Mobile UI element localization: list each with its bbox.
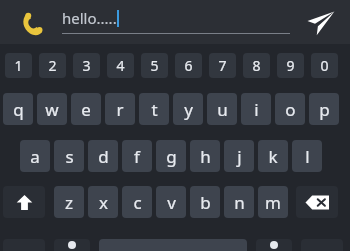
button[interactable]: k	[258, 140, 288, 172]
button[interactable]: t	[139, 93, 169, 125]
button[interactable]: q	[3, 93, 33, 125]
staticText: h	[200, 145, 211, 168]
button[interactable]: j	[224, 140, 254, 172]
staticText: 2	[48, 56, 57, 75]
button[interactable]: a	[20, 140, 50, 172]
button[interactable]: n	[224, 186, 254, 218]
staticText: w	[45, 98, 59, 121]
staticText: 3	[82, 56, 91, 75]
button[interactable]: 2	[39, 53, 66, 78]
staticText: 8	[252, 56, 261, 75]
button[interactable]: Call	[17, 8, 47, 38]
button[interactable]: s	[54, 140, 84, 172]
button[interactable]: 0	[311, 53, 338, 78]
staticText: 5	[150, 56, 159, 75]
staticText: a	[30, 145, 40, 168]
button[interactable]: 3	[73, 53, 100, 78]
staticText: r	[116, 98, 124, 121]
staticText: 6	[184, 56, 193, 75]
staticText: n	[234, 191, 245, 214]
staticText: 4	[116, 56, 125, 75]
button[interactable]: z	[54, 186, 84, 218]
staticText: q	[13, 98, 24, 121]
button[interactable]: x	[88, 186, 118, 218]
button[interactable]: 9	[277, 53, 304, 78]
button[interactable]: c	[122, 186, 152, 218]
button[interactable]: g	[156, 140, 186, 172]
button[interactable]: u	[207, 93, 237, 125]
button[interactable]: i	[241, 93, 271, 125]
staticText: hello.....	[62, 8, 117, 28]
staticText: x	[99, 191, 108, 214]
button[interactable]: Numbers	[256, 239, 292, 251]
button[interactable]: Backspace	[296, 186, 338, 218]
staticText: m	[265, 191, 281, 214]
button[interactable]: d	[88, 140, 118, 172]
staticText: i	[254, 98, 259, 121]
staticText: d	[98, 145, 109, 168]
staticText: y	[184, 98, 193, 121]
button[interactable]: 5	[141, 53, 168, 78]
staticText: p	[319, 98, 330, 121]
staticText: k	[268, 145, 278, 168]
button[interactable]: b	[190, 186, 220, 218]
staticText: t	[151, 98, 158, 121]
button[interactable]: Shift	[3, 186, 45, 218]
button[interactable]: Settings	[54, 239, 90, 251]
staticText: v	[167, 191, 176, 214]
staticText: s	[65, 145, 74, 168]
button[interactable]: p	[309, 93, 339, 125]
button[interactable]: 4	[107, 53, 134, 78]
button[interactable]: h	[190, 140, 220, 172]
button[interactable]: 8	[243, 53, 270, 78]
staticText: z	[65, 191, 73, 214]
button[interactable]: r	[105, 93, 135, 125]
button[interactable]: o	[275, 93, 305, 125]
staticText: o	[285, 98, 296, 121]
button[interactable]: f	[122, 140, 152, 172]
staticText: 7	[218, 56, 227, 75]
button[interactable]: 7	[209, 53, 236, 78]
staticText: e	[81, 98, 91, 121]
button[interactable]: w	[37, 93, 67, 125]
staticText: 1	[14, 56, 23, 75]
staticText: f	[134, 145, 140, 168]
button[interactable]: v	[156, 186, 186, 218]
button[interactable]: 1	[5, 53, 32, 78]
button[interactable]: 6	[175, 53, 202, 78]
staticText: l	[305, 145, 310, 168]
button[interactable]: l	[292, 140, 322, 172]
staticText: 0	[320, 56, 329, 75]
button[interactable]: e	[71, 93, 101, 125]
button[interactable]: y	[173, 93, 203, 125]
staticText: u	[217, 98, 228, 121]
staticText: c	[133, 191, 142, 214]
staticText: 9	[286, 56, 295, 75]
button[interactable]: hello.....	[62, 8, 290, 34]
staticText: g	[166, 145, 177, 168]
staticText: b	[200, 191, 211, 214]
button[interactable]: Send	[303, 5, 337, 39]
button[interactable]: m	[258, 186, 288, 218]
staticText: j	[237, 145, 242, 168]
